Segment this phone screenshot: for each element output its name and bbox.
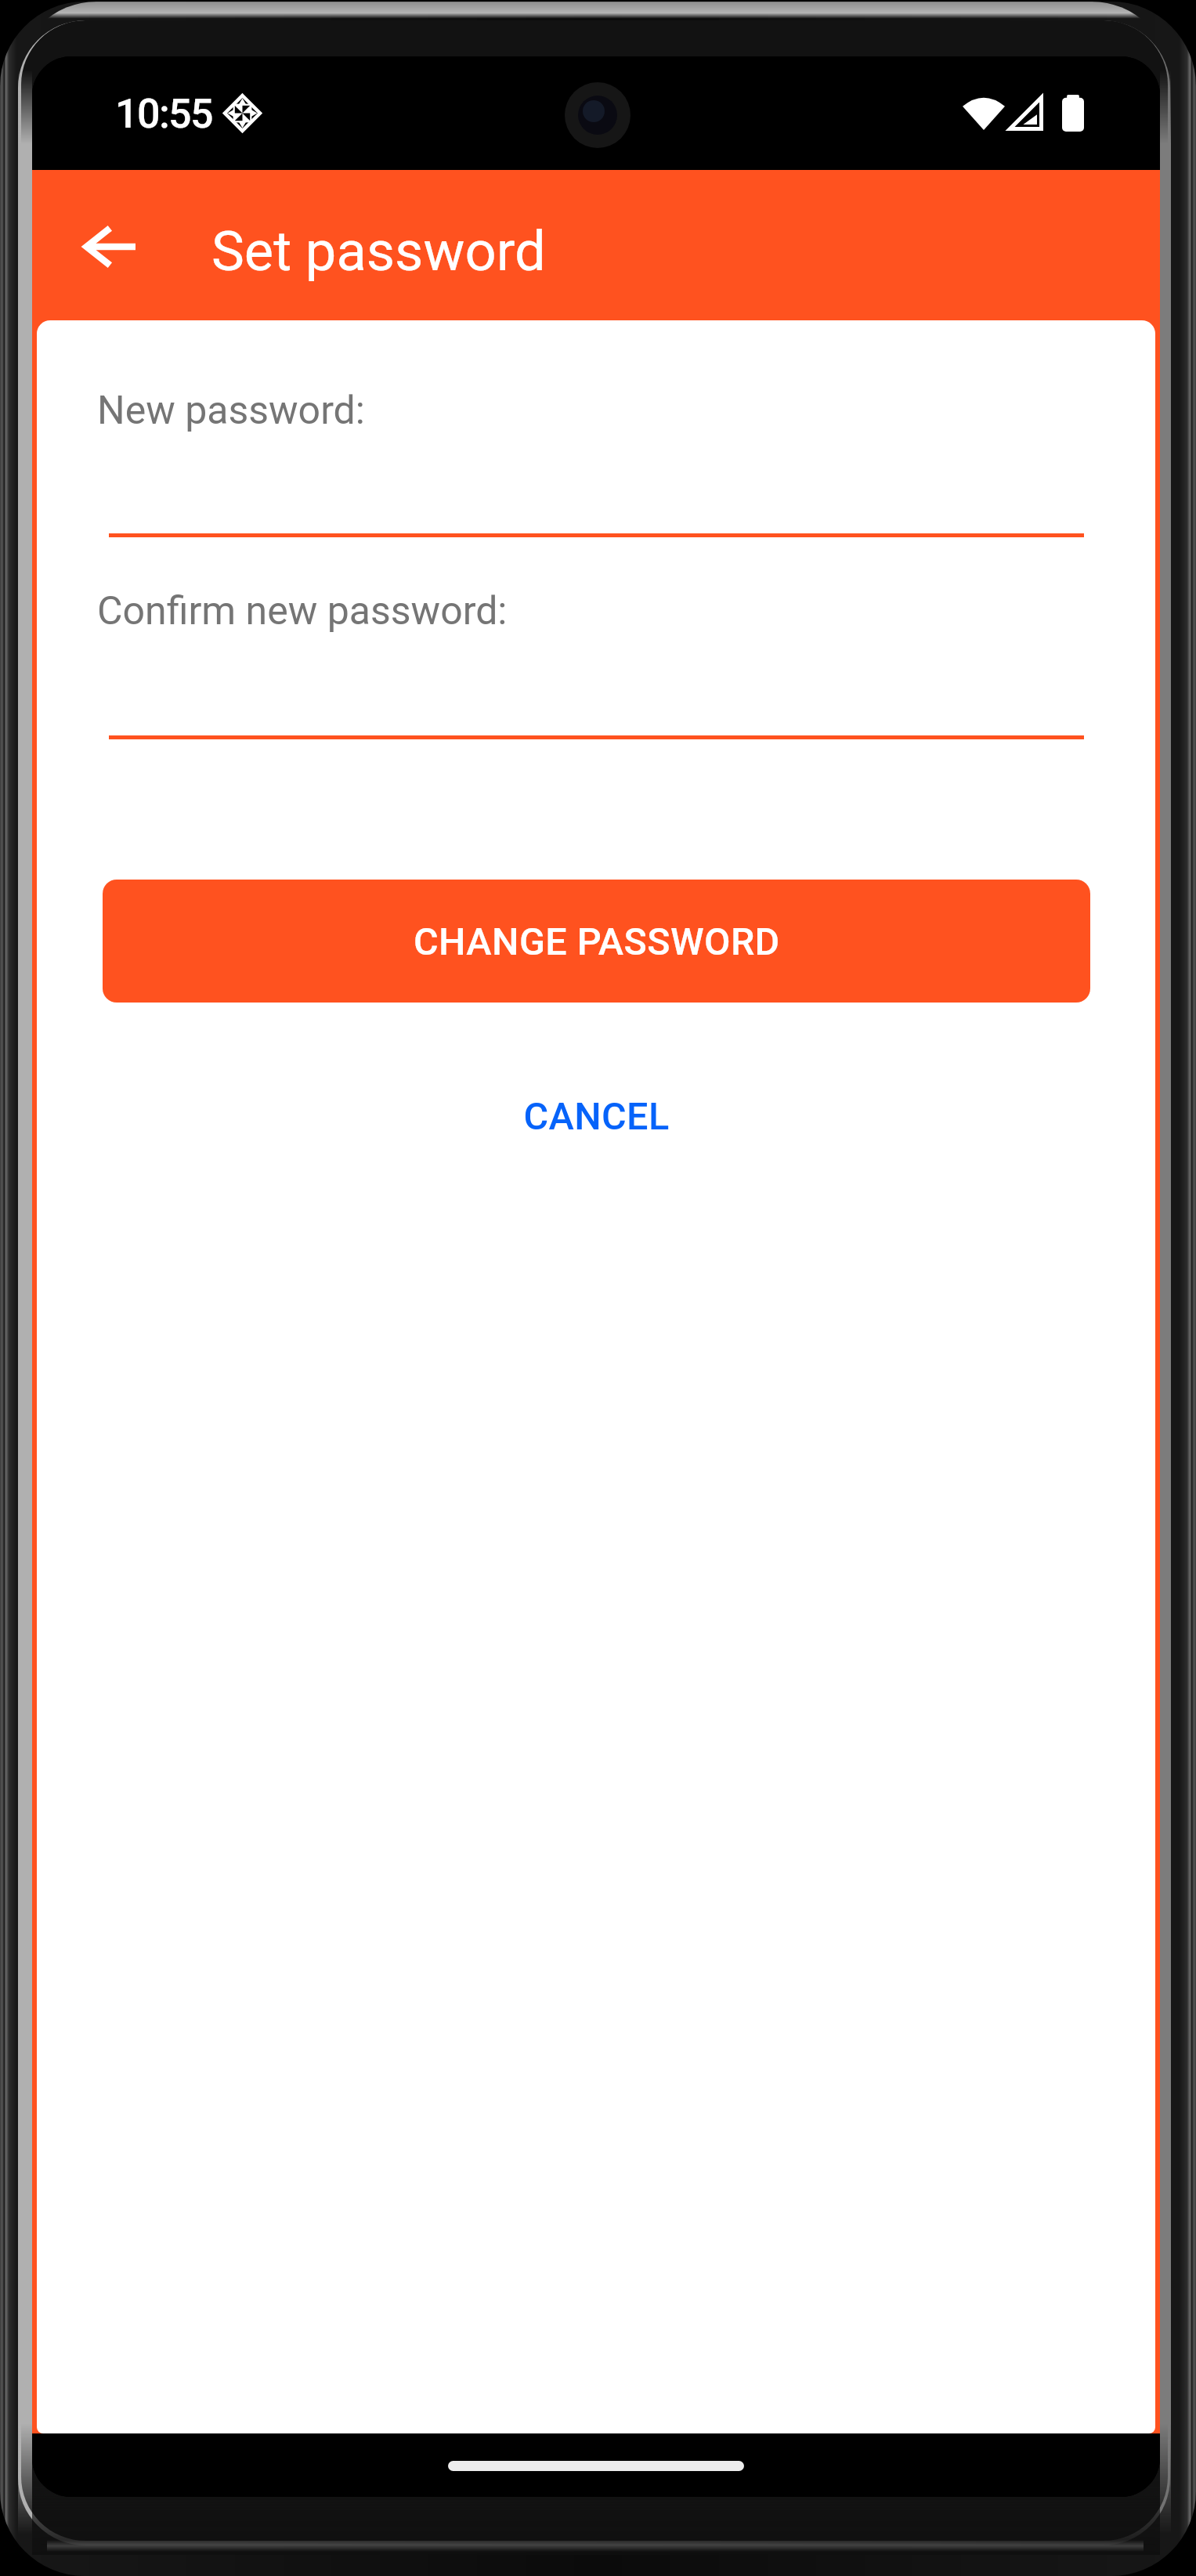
button[interactable]: Back bbox=[74, 211, 146, 283]
staticText: Set password bbox=[211, 219, 546, 284]
button[interactable]: CANCEL bbox=[103, 1061, 1090, 1171]
staticText: CANCEL bbox=[523, 1094, 670, 1139]
staticText: Confirm new password: bbox=[97, 588, 508, 634]
staticText: CHANGE PASSWORD bbox=[414, 919, 780, 964]
staticText: 10:55 bbox=[115, 90, 213, 138]
staticText: New password: bbox=[97, 388, 365, 434]
button[interactable]: CHANGE PASSWORD bbox=[103, 880, 1090, 1003]
